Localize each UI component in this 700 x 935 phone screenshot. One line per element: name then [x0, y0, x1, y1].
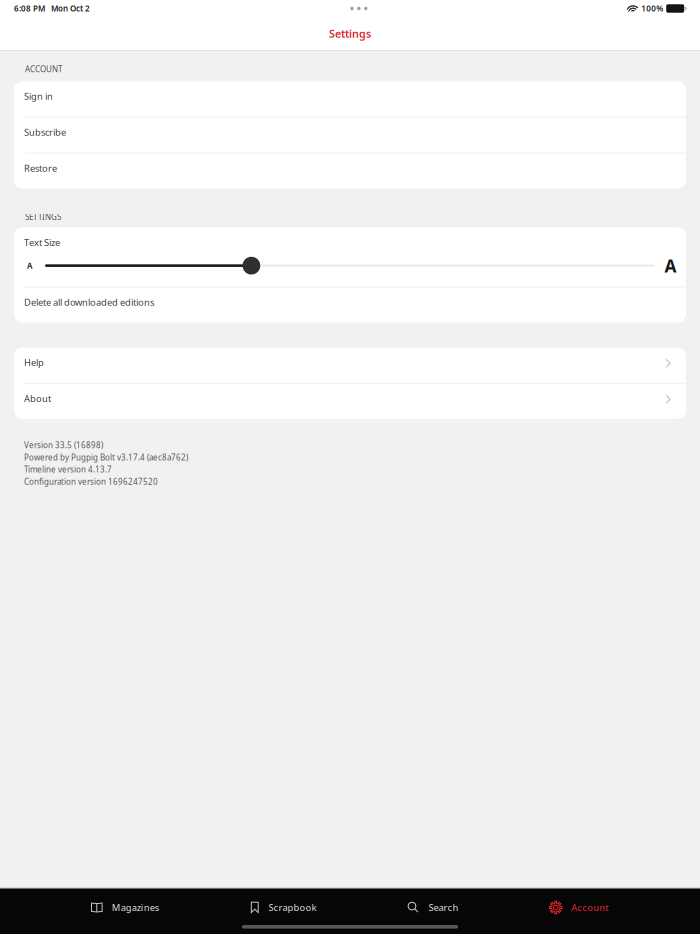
staticText: A: [664, 254, 676, 277]
button[interactable]: Search: [407, 893, 458, 921]
button[interactable]: Help: [14, 348, 686, 383]
staticText: Account: [571, 901, 609, 914]
button[interactable]: Scrapbook: [251, 893, 317, 921]
staticText: Restore: [24, 162, 57, 174]
button[interactable]: Delete all downloaded editions: [14, 287, 686, 323]
staticText: Powered by Pugpig Bolt v3.17.4 (aec8a762…: [24, 452, 188, 463]
staticText: Mon Oct 2: [45, 3, 90, 14]
button[interactable]: Sign in: [14, 81, 686, 117]
staticText: Search: [428, 901, 458, 914]
staticText: 6:08 PM: [14, 3, 45, 14]
staticText: Scrapbook: [269, 901, 317, 914]
staticText: About: [24, 392, 51, 404]
staticText: 100%: [641, 3, 663, 14]
staticText: A: [27, 260, 33, 271]
button[interactable]: Restore: [14, 153, 686, 189]
staticText: Settings: [329, 26, 371, 41]
staticText: Delete all downloaded editions: [24, 296, 154, 308]
staticText: Version 33.5 (16898): [24, 440, 103, 450]
staticText: Sign in: [24, 90, 53, 102]
button[interactable]: Account: [549, 893, 609, 921]
button[interactable]: Subscribe: [14, 117, 686, 153]
staticText: Subscribe: [24, 126, 66, 138]
staticText: SETTINGS: [25, 212, 61, 222]
staticText: Configuration version 1696247520: [24, 476, 158, 487]
staticText: Magazines: [112, 901, 160, 914]
button[interactable]: About: [14, 384, 686, 419]
staticText: ACCOUNT: [25, 64, 62, 74]
staticText: Text Size: [24, 236, 60, 249]
staticText: Help: [24, 356, 44, 368]
staticText: Timeline version 4.13.7: [24, 464, 112, 475]
button[interactable]: Magazines: [91, 893, 160, 921]
